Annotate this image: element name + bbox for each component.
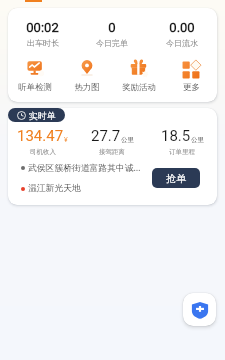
staticText: 18.5	[161, 127, 191, 145]
button[interactable]: 134.47	[8, 108, 217, 205]
staticText: 134.47	[17, 127, 64, 145]
staticText: 听单检测	[18, 82, 52, 93]
staticText: 出车时长	[27, 38, 59, 48]
staticText: 0.00	[169, 20, 195, 35]
staticText: 今日流水	[166, 38, 198, 48]
button[interactable]: 0	[77, 20, 147, 48]
button[interactable]: 0.00	[147, 20, 217, 48]
staticText: 订单里程	[169, 148, 195, 156]
staticText: 0	[108, 20, 116, 35]
staticText: 接驾距离	[99, 148, 125, 156]
staticText: 00:02	[26, 20, 59, 35]
staticText: ¥	[64, 135, 68, 144]
staticText: 奖励活动	[122, 82, 156, 93]
staticText: 27.7	[91, 127, 121, 145]
staticText: 公里	[191, 136, 204, 144]
button[interactable]: 抢单	[152, 168, 200, 188]
staticText: 公里	[121, 136, 134, 144]
staticText: 更多	[183, 82, 200, 93]
staticText: 武侯区簇桥街道富路其中诚…	[28, 162, 141, 174]
staticText: 抢单	[166, 172, 186, 185]
staticText: 今日完单	[96, 38, 128, 48]
button[interactable]: 00:02	[8, 20, 77, 48]
button[interactable]: 听单检测	[8, 59, 61, 93]
staticText: 司机收入	[30, 148, 56, 156]
button[interactable]: 热力图	[61, 59, 113, 93]
staticText: 热力图	[74, 82, 100, 93]
button[interactable]: 更多	[165, 59, 217, 93]
button[interactable]: 奖励活动	[113, 59, 165, 93]
staticText: 温江新光天地	[28, 183, 81, 194]
staticText: 实时单	[29, 110, 56, 121]
button[interactable]: Safety center	[183, 293, 216, 326]
